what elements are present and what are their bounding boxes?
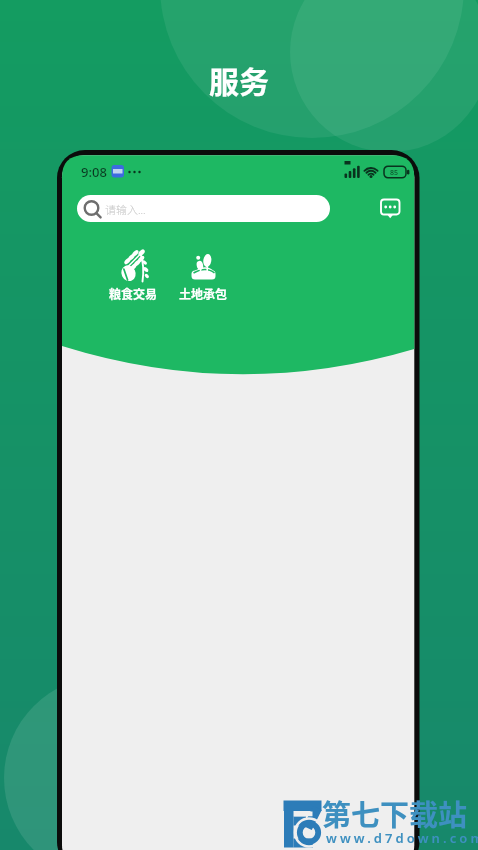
staticText: 粮食交易 — [109, 285, 158, 302]
staticText: 9:08 — [81, 163, 107, 181]
button[interactable] — [377, 194, 405, 222]
staticText: 土地承包 — [179, 285, 228, 302]
staticText: 第七下载站 — [322, 792, 468, 834]
button[interactable]: 请输入... — [77, 195, 330, 222]
staticText: 85 — [390, 168, 399, 178]
staticText: 服务 — [209, 58, 269, 101]
button[interactable]: 粮食交易 — [106, 246, 161, 302]
button[interactable]: 土地承包 — [176, 246, 231, 302]
staticText: www.d7down.com — [326, 829, 478, 847]
staticText: 请输入... — [105, 201, 146, 217]
